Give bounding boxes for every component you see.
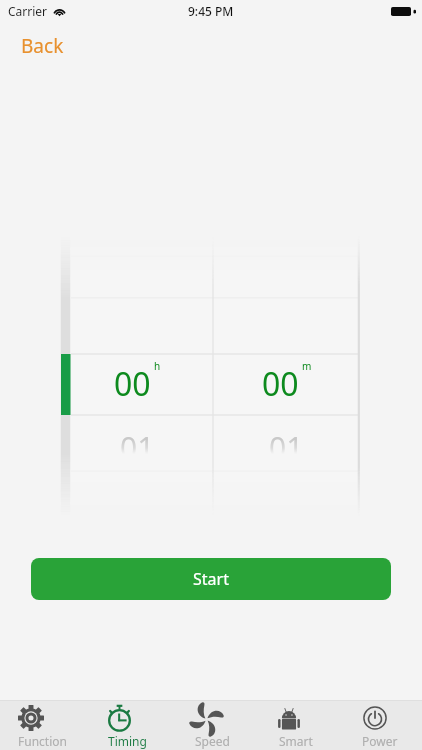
staticText: Start (193, 568, 229, 590)
staticText: 00 (262, 362, 299, 406)
staticText: Back (21, 33, 64, 59)
staticText: m (302, 359, 312, 373)
button[interactable]: Function (0, 701, 85, 750)
staticText: 01 (120, 427, 155, 468)
button[interactable]: Back (13, 29, 72, 63)
staticText: 9:45 PM (188, 3, 234, 19)
button[interactable]: Smart (254, 701, 338, 750)
button[interactable]: Power (338, 701, 422, 750)
staticText: Speed (195, 733, 230, 749)
staticText: Smart (279, 733, 313, 749)
staticText: Timing (108, 733, 147, 749)
button[interactable]: 00 (61, 236, 360, 516)
staticText: h (154, 359, 161, 373)
staticText: Carrier (8, 3, 48, 19)
button[interactable]: Timing (85, 701, 170, 750)
staticText: Function (18, 733, 67, 749)
staticText: 01 (269, 427, 304, 468)
staticText: 00 (114, 362, 151, 406)
button[interactable]: Speed (170, 701, 254, 750)
staticText: Power (362, 733, 398, 749)
button[interactable]: Start (31, 558, 391, 600)
